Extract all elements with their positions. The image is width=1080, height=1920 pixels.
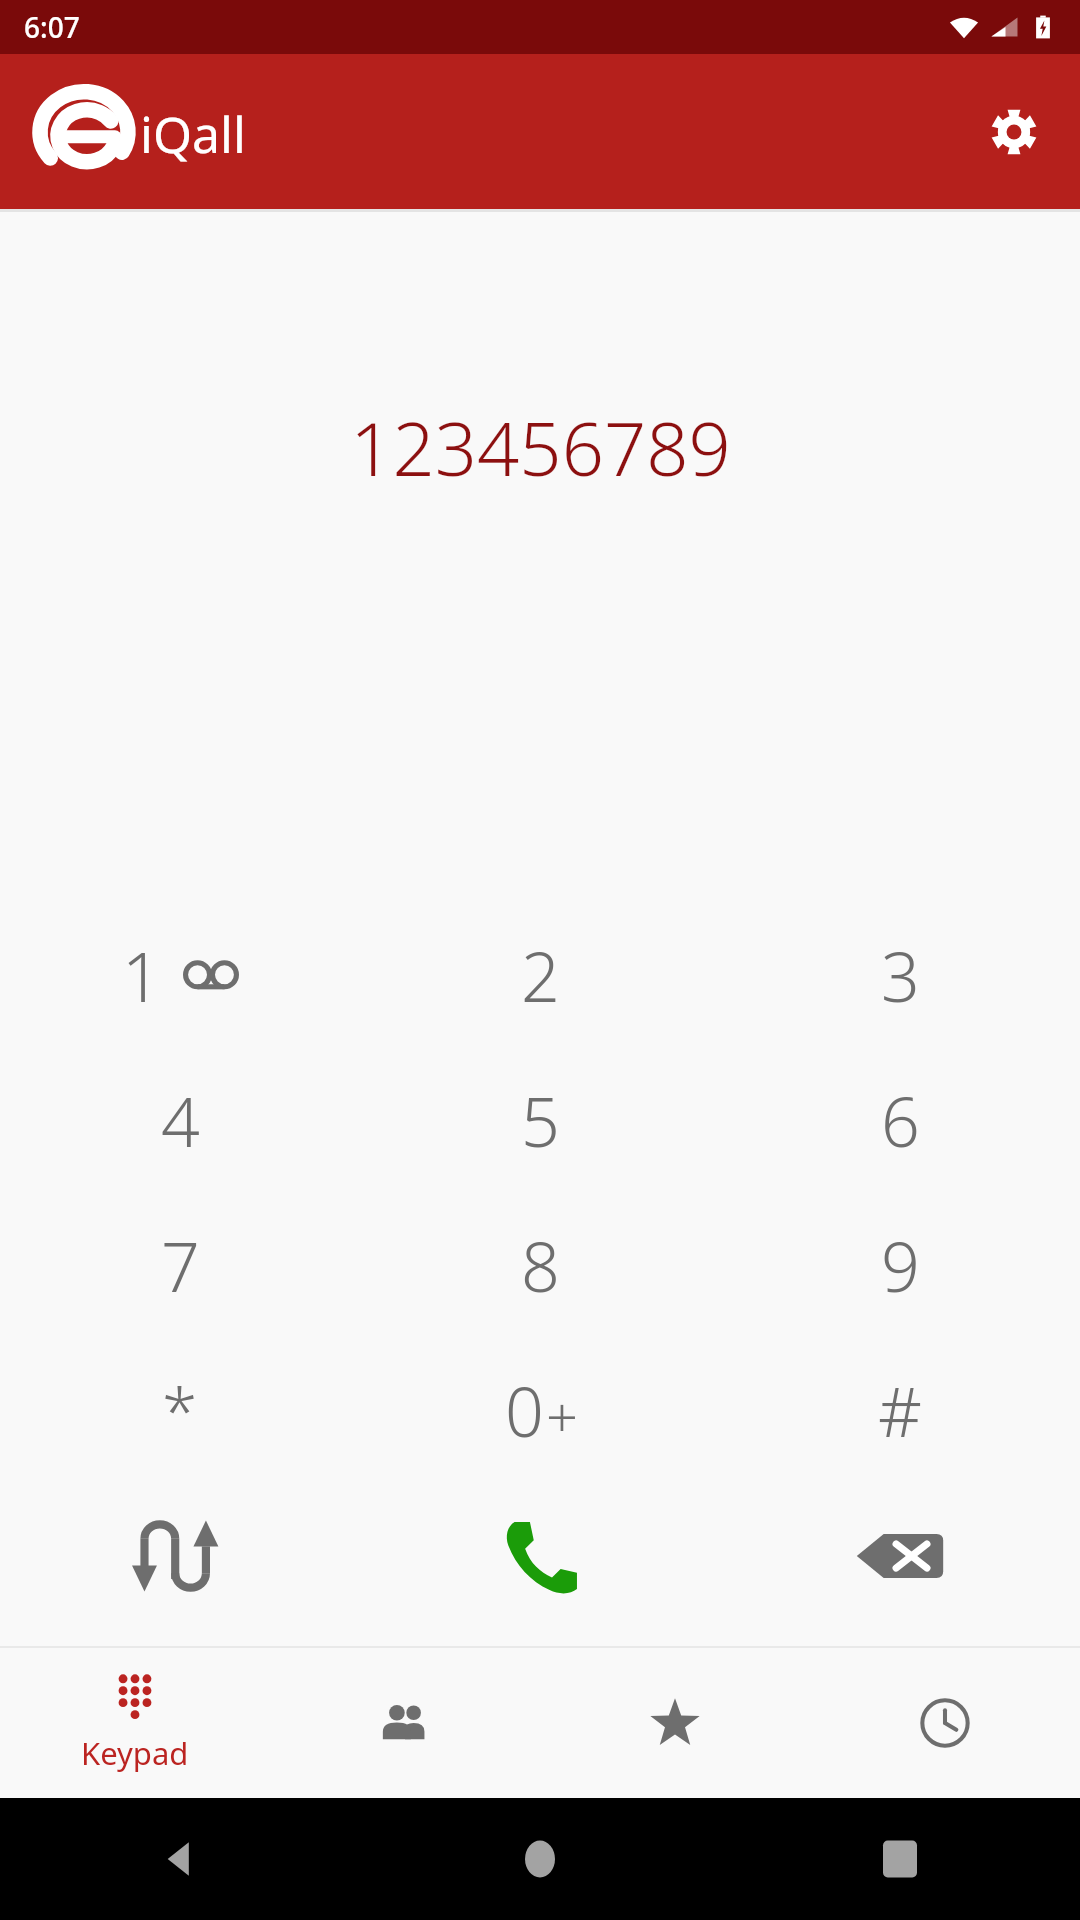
button[interactable]: Keypad [0, 1648, 270, 1798]
staticText: 0 [505, 1364, 544, 1457]
button[interactable]: Back [0, 1798, 360, 1920]
button[interactable]: Recents [720, 1798, 1080, 1920]
staticText: Keypad [81, 1732, 189, 1774]
button[interactable]: 2 [360, 903, 720, 1048]
button[interactable]: 8 [360, 1193, 720, 1338]
staticText: iQall [140, 100, 246, 168]
button[interactable]: 4 [0, 1048, 360, 1193]
staticText: 6 [881, 1074, 920, 1167]
button[interactable]: Tab [540, 1648, 810, 1798]
staticText: 2 [521, 929, 560, 1022]
button[interactable]: Tab [270, 1648, 540, 1798]
button[interactable]: 3 [720, 903, 1080, 1048]
button[interactable]: 7 [0, 1193, 360, 1338]
staticText: # [878, 1364, 922, 1457]
button[interactable]: # [720, 1338, 1080, 1483]
button[interactable]: Tab [810, 1648, 1080, 1798]
button[interactable]: * [0, 1338, 360, 1483]
button[interactable]: 6 [720, 1048, 1080, 1193]
staticText: 7 [161, 1219, 200, 1312]
staticText: 1 [122, 929, 161, 1022]
button[interactable]: 9 [720, 1193, 1080, 1338]
staticText: 6:07 [24, 8, 80, 46]
button[interactable]: Backspace [720, 1483, 1080, 1628]
staticText: 5 [521, 1074, 560, 1167]
staticText: 3 [881, 929, 920, 1022]
button[interactable]: 1 [0, 903, 360, 1048]
staticText: 123456789 [350, 397, 731, 498]
staticText: 4 [161, 1074, 200, 1167]
staticText: * [162, 1367, 198, 1454]
staticText: + [546, 1377, 578, 1453]
button[interactable]: 5 [360, 1048, 720, 1193]
button[interactable]: Home [360, 1798, 720, 1920]
staticText: 9 [881, 1219, 920, 1312]
staticText: 8 [521, 1219, 560, 1312]
button[interactable]: Settings [974, 92, 1054, 172]
button[interactable]: 0 [360, 1338, 720, 1483]
button[interactable]: Call [360, 1483, 720, 1628]
button[interactable]: Swap calls [0, 1483, 360, 1628]
